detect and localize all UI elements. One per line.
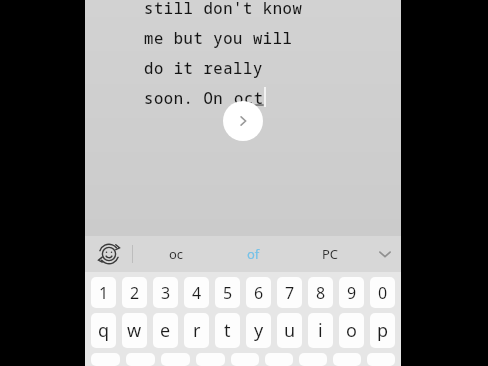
button[interactable]: 7 (277, 277, 302, 308)
staticText: 2 (130, 282, 140, 304)
staticText: e (160, 318, 171, 343)
button[interactable]: o (339, 313, 364, 348)
button[interactable] (367, 353, 395, 366)
button[interactable]: 4 (184, 277, 209, 308)
button[interactable] (265, 353, 293, 366)
button[interactable]: t (215, 313, 240, 348)
button[interactable]: More suggestions (368, 236, 401, 272)
button[interactable] (299, 353, 327, 366)
staticText: 8 (316, 282, 326, 304)
button[interactable]: 3 (153, 277, 178, 308)
staticText: q (98, 318, 110, 343)
button[interactable] (126, 353, 155, 366)
button[interactable]: of (215, 236, 292, 272)
button[interactable] (231, 353, 259, 366)
button[interactable]: 5 (215, 277, 240, 308)
staticText: 5 (223, 282, 233, 304)
staticText: still don't know (144, 0, 303, 18)
staticText: oct (234, 87, 264, 108)
staticText: 4 (192, 282, 202, 304)
staticText: 0 (378, 282, 388, 304)
staticText: o (346, 318, 357, 343)
button[interactable]: oc (137, 236, 215, 272)
button[interactable]: Stickers and emoji (91, 236, 127, 272)
button[interactable]: 6 (246, 277, 271, 308)
staticText: p (377, 318, 389, 343)
button[interactable] (333, 353, 361, 366)
button[interactable]: w (122, 313, 147, 348)
staticText: soon. On (144, 87, 234, 108)
staticText: 7 (285, 282, 295, 304)
staticText: w (127, 318, 142, 343)
staticText: t (224, 318, 231, 343)
staticText: do it really (144, 57, 263, 78)
button[interactable]: 2 (122, 277, 147, 308)
staticText: 3 (161, 282, 171, 304)
button[interactable] (196, 353, 225, 366)
staticText: u (284, 318, 296, 343)
button[interactable]: e (153, 313, 178, 348)
staticText: i (318, 318, 323, 343)
staticText: 1 (99, 282, 109, 304)
staticText: of (247, 245, 260, 263)
staticText: PC (322, 245, 339, 263)
button[interactable] (161, 353, 190, 366)
staticText: 9 (347, 282, 357, 304)
button[interactable]: y (246, 313, 271, 348)
button[interactable]: r (184, 313, 209, 348)
staticText: r (193, 318, 201, 343)
button[interactable]: p (370, 313, 395, 348)
staticText: y (254, 318, 264, 343)
staticText: 6 (254, 282, 264, 304)
button[interactable]: Next (223, 101, 263, 141)
staticText: me but you will (144, 27, 293, 48)
button[interactable]: PC (292, 236, 369, 272)
button[interactable] (91, 353, 120, 366)
staticText: oc (169, 245, 184, 263)
button[interactable]: 0 (370, 277, 395, 308)
button[interactable]: 1 (91, 277, 116, 308)
button[interactable]: i (308, 313, 333, 348)
button[interactable]: u (277, 313, 302, 348)
button[interactable]: q (91, 313, 116, 348)
button[interactable]: 9 (339, 277, 364, 308)
button[interactable]: 8 (308, 277, 333, 308)
